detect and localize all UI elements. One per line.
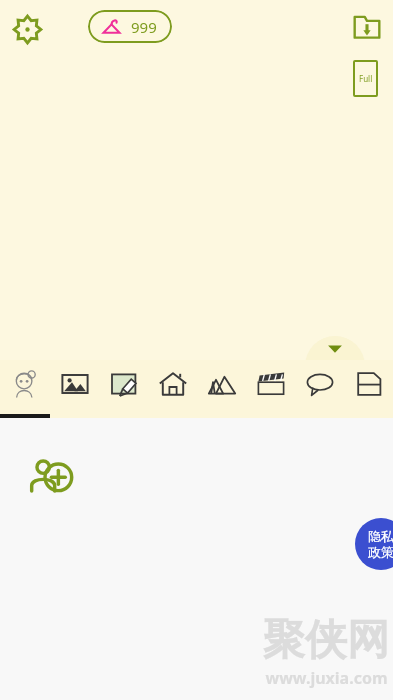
button[interactable]: Paint [99,360,148,418]
button[interactable]: Collapse [305,336,365,360]
button[interactable]: Chat [295,360,344,418]
button[interactable]: Download [350,10,383,43]
button[interactable]: Settings [7,9,47,49]
button[interactable]: Add friend [23,447,79,503]
staticText: 隐私 [368,528,393,544]
staticText: www.juxia.com [265,667,388,689]
staticText: 聚侠网 [263,614,389,667]
button[interactable]: 999 [88,10,172,43]
button[interactable]: Video [246,360,295,418]
staticText: 政策 [368,544,393,560]
staticText: 999 [131,17,157,37]
button[interactable]: Photos [50,360,99,418]
button[interactable]: Home [148,360,197,418]
staticText: Full [359,73,373,84]
button[interactable]: Full [353,60,378,97]
button[interactable]: Document [344,360,393,418]
button[interactable]: Avatar [0,360,50,418]
button[interactable]: Scenery [197,360,246,418]
button[interactable]: 隐私 [355,518,393,570]
